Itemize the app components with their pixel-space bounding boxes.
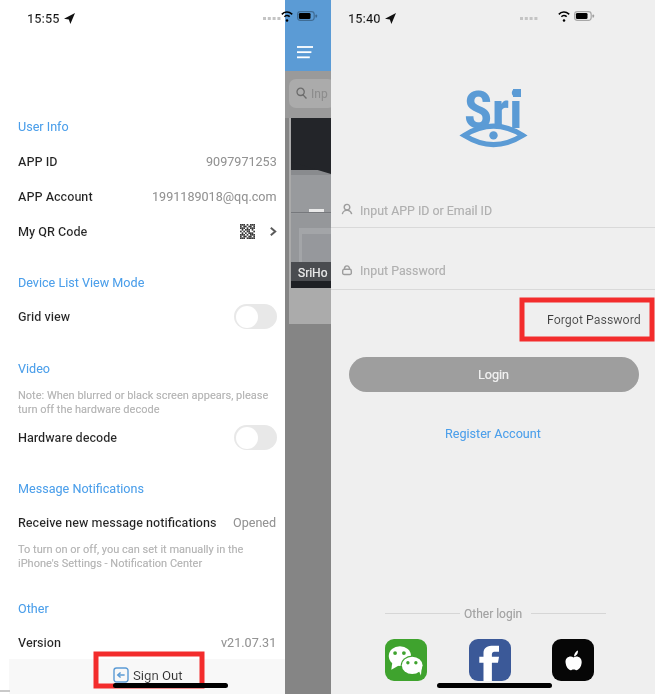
button[interactable]: Sign in with Facebook (469, 639, 511, 681)
button[interactable]: Version (0, 625, 285, 659)
staticText: My QR Code (18, 224, 88, 239)
staticText: 1991189018@qq.com (152, 189, 277, 204)
staticText: SriHo (298, 266, 328, 280)
button[interactable]: Input Password (331, 248, 655, 292)
staticText: Message Notifications (18, 481, 144, 496)
staticText: 9097971253 (206, 154, 277, 169)
staticText: Video (18, 361, 51, 376)
staticText: Sign Out (133, 668, 183, 683)
staticText: APP Account (18, 189, 93, 204)
staticText: Device List View Mode (18, 275, 145, 290)
staticText: To turn on or off, you can set it manual… (18, 543, 274, 570)
staticText: Other (18, 601, 49, 616)
button[interactable]: Search devices (289, 79, 335, 108)
staticText: Input Password (360, 263, 446, 278)
staticText: Receive new message notifications (18, 515, 217, 530)
button[interactable]: My QR Code (0, 214, 285, 248)
staticText: Inp (311, 87, 328, 101)
staticText: Opened (233, 515, 277, 530)
button[interactable]: Login (349, 357, 639, 392)
button[interactable]: Input APP ID or Email ID (331, 188, 655, 232)
button[interactable]: APP Account (0, 179, 285, 213)
button[interactable]: APP ID (0, 144, 285, 178)
button[interactable]: Hardware decode (0, 420, 285, 454)
staticText: 15:55 (27, 11, 60, 26)
button[interactable]: Register Account (439, 423, 547, 444)
button[interactable]: Sign in with Apple (552, 639, 594, 681)
staticText: Hardware decode (18, 430, 118, 445)
staticText: Input APP ID or Email ID (360, 203, 493, 218)
button[interactable]: Open navigation menu (290, 39, 319, 64)
staticText: v21.07.31 (221, 635, 277, 650)
staticText: Forgot Password (547, 312, 641, 327)
staticText: Grid view (18, 309, 71, 324)
button[interactable]: Forgot Password (522, 300, 652, 339)
staticText: 15:40 (348, 11, 381, 26)
staticText: Version (18, 635, 61, 650)
button[interactable]: Receive new message notifications (0, 505, 285, 539)
staticText: Note: When blurred or black screen appea… (18, 389, 274, 416)
button[interactable]: Grid view (0, 299, 285, 333)
button[interactable]: Sign Out (99, 661, 199, 689)
staticText: Sri (464, 80, 523, 136)
staticText: User Info (18, 119, 69, 134)
staticText: Login (478, 367, 510, 382)
button[interactable]: Sign in with WeChat (385, 639, 427, 681)
staticText: Register Account (445, 426, 541, 441)
staticText: APP ID (18, 154, 58, 169)
staticText: Other login (464, 607, 523, 621)
